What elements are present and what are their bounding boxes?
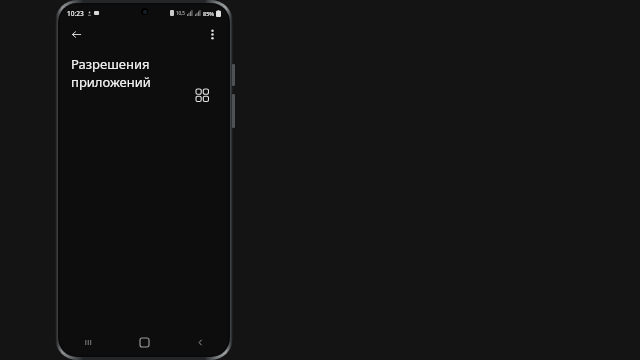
button[interactable]: More options	[200, 22, 224, 46]
button[interactable]: Home	[116, 329, 172, 355]
staticText: 10:23	[67, 9, 84, 18]
button[interactable]: Recent apps	[60, 329, 116, 355]
staticText: 10,5	[176, 10, 185, 16]
button[interactable]: App permissions	[192, 85, 212, 105]
staticText: 85%	[203, 10, 214, 17]
button[interactable]: Back	[64, 22, 88, 46]
button[interactable]: Back	[172, 329, 228, 355]
staticText: Разрешения	[71, 55, 150, 73]
staticText: приложений	[71, 73, 151, 91]
